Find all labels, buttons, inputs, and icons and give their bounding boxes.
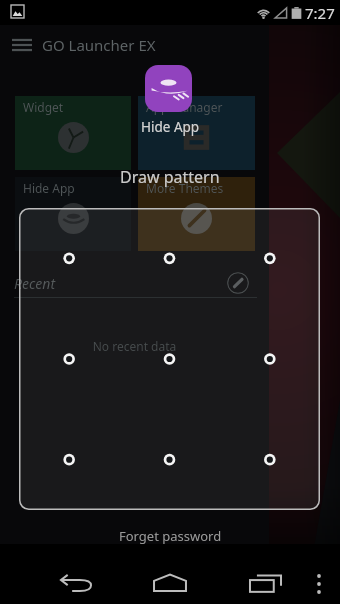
staticText: 7:27 [305, 3, 335, 23]
button[interactable]: Back [53, 560, 99, 604]
button[interactable]: More options [300, 565, 338, 603]
staticText: Hide App [141, 118, 200, 136]
staticText: GO Launcher EX [42, 35, 156, 55]
button[interactable]: Widget [15, 96, 131, 170]
button[interactable]: Recents [242, 560, 288, 604]
button[interactable]: More Themes [138, 177, 255, 251]
staticText: Widget [23, 99, 64, 115]
staticText: Hide App [23, 180, 75, 196]
button[interactable]: Hide App [145, 65, 192, 112]
button[interactable]: Hide App [15, 177, 131, 251]
staticText: No recent data [0, 338, 269, 354]
button[interactable]: Forget password [105, 524, 236, 548]
button[interactable]: Home [147, 560, 193, 604]
button[interactable]: GO Launcher EX [0, 30, 269, 60]
staticText: More Themes [146, 180, 224, 196]
button[interactable]: Edit recent apps [227, 272, 249, 294]
button[interactable]: App Manager [138, 96, 255, 170]
staticText: Recent [14, 274, 56, 293]
staticText: Forget password [119, 527, 222, 545]
staticText: App Manager [146, 99, 223, 115]
staticText: Draw pattern [120, 166, 220, 188]
